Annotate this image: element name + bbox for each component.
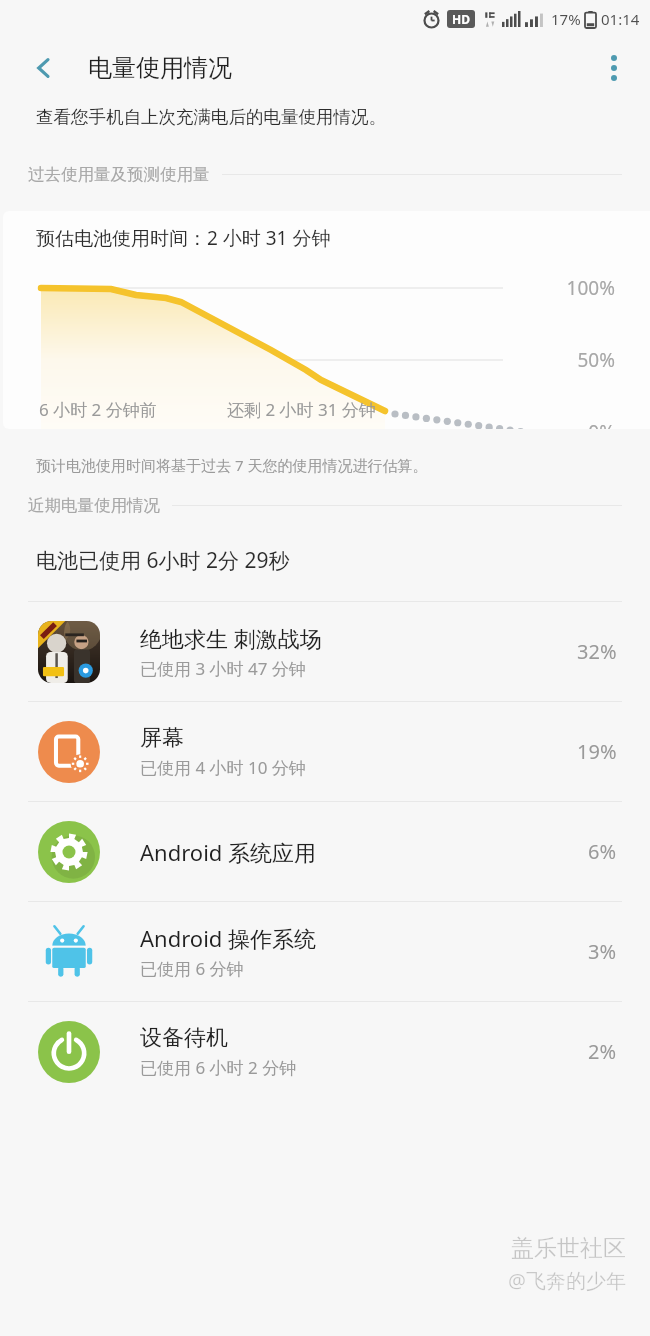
staticText: 盖乐世社区 (511, 1234, 626, 1263)
staticText: 已使用 6 分钟 (140, 957, 244, 980)
staticText: @飞奔的少年 (508, 1267, 626, 1294)
button[interactable]: Android 系统应用 (0, 801, 650, 901)
staticText: 6 小时 2 分钟前 (39, 398, 157, 421)
button[interactable]: 设备待机 (0, 1001, 650, 1101)
staticText: HD (452, 11, 470, 27)
staticText: Android 系统应用 (140, 837, 317, 867)
staticText: 查看您手机自上次充满电后的电量使用情况。 (36, 106, 386, 128)
staticText: 0% (3, 419, 615, 429)
staticText: 19% (577, 738, 617, 765)
button[interactable]: Back (22, 46, 66, 90)
staticText: 17% (551, 9, 581, 29)
staticText: 预估电池使用时间：2 小时 31 分钟 (36, 225, 331, 251)
button[interactable]: More options (590, 44, 638, 92)
staticText: 屏幕 (140, 724, 184, 752)
button[interactable]: 绝地求生 刺激战场 (0, 601, 650, 701)
staticText: 3% (588, 938, 617, 965)
staticText: 已使用 3 小时 47 分钟 (140, 657, 306, 680)
staticText: Android 操作系统 (140, 923, 317, 953)
staticText: 过去使用量及预测使用量 (28, 164, 210, 185)
staticText: 32% (577, 638, 617, 665)
staticText: 预计电池使用时间将基于过去 7 天您的使用情况进行估算。 (36, 455, 428, 475)
staticText: 已使用 4 小时 10 分钟 (140, 756, 306, 779)
staticText: 绝地求生 刺激战场 (140, 623, 322, 653)
staticText: 2% (588, 1038, 617, 1065)
staticText: 电量使用情况 (88, 53, 232, 83)
staticText: 近期电量使用情况 (28, 495, 160, 516)
staticText: 6% (588, 838, 617, 865)
button[interactable]: 屏幕 (0, 701, 650, 801)
staticText: 设备待机 (140, 1024, 228, 1052)
button[interactable]: Android 操作系统 (0, 901, 650, 1001)
staticText: 电池已使用 6小时 2分 29秒 (36, 546, 290, 575)
staticText: 100% (3, 275, 615, 301)
staticText: 已使用 6 小时 2 分钟 (140, 1056, 297, 1079)
staticText: 还剩 2 小时 31 分钟 (227, 398, 376, 421)
staticText: 01:14 (601, 9, 640, 29)
staticText: 50% (3, 347, 615, 373)
